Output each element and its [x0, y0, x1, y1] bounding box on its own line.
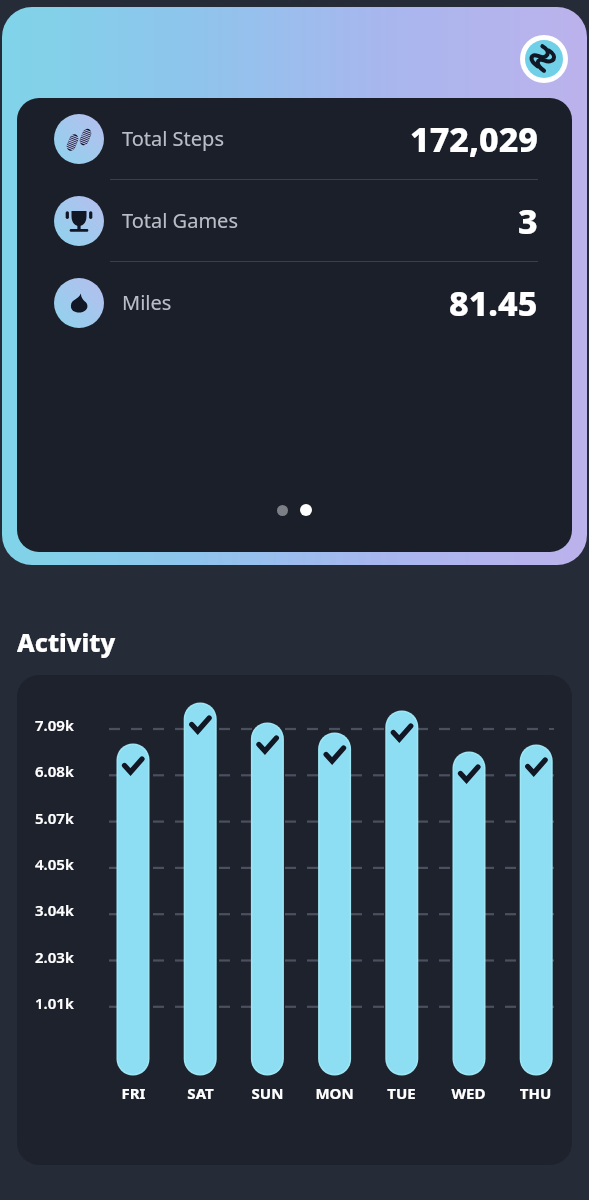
staticText: 5.07k [35, 808, 89, 828]
staticText: 6.08k [35, 761, 89, 781]
staticText: FRI [100, 1083, 167, 1103]
staticText: THU [502, 1083, 569, 1103]
staticText: 7.09k [35, 715, 89, 735]
staticText: Activity [17, 625, 116, 659]
staticText: 3.04k [35, 900, 89, 920]
staticText: SAT [167, 1083, 234, 1103]
staticText: WED [435, 1083, 502, 1103]
button[interactable]: Total Games [17, 180, 572, 261]
button[interactable]: 7.09k [17, 675, 572, 1165]
staticText: TUE [368, 1083, 435, 1103]
button[interactable]: Total Steps [17, 98, 572, 179]
staticText: 81.45 [449, 280, 538, 326]
staticText: 3 [518, 198, 538, 244]
staticText: Total Games [122, 207, 238, 234]
button[interactable] [277, 505, 288, 516]
staticText: 2.03k [35, 947, 89, 967]
staticText: Miles [122, 289, 172, 316]
staticText: 172,029 [410, 116, 538, 162]
staticText: 1.01k [35, 993, 89, 1013]
staticText: SUN [234, 1083, 301, 1103]
button[interactable]: Miles [17, 262, 572, 343]
staticText: MON [301, 1083, 368, 1103]
staticText: 4.05k [35, 854, 89, 874]
staticText: Total Steps [122, 125, 224, 152]
button[interactable] [300, 504, 312, 516]
button[interactable]: App logo [520, 35, 568, 83]
